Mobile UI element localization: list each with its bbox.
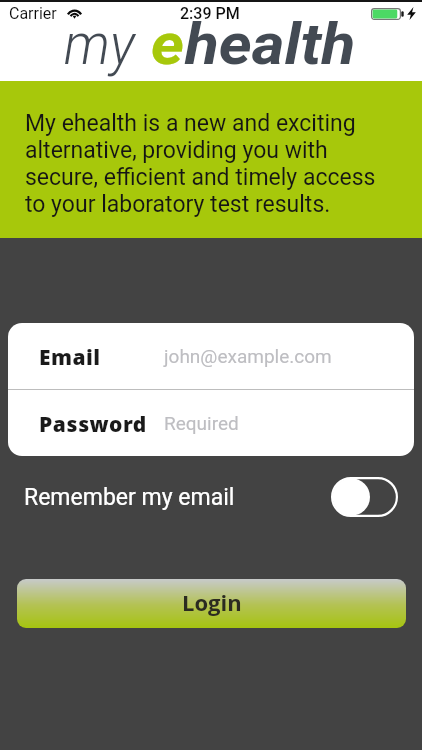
button[interactable]: Remember my email (24, 474, 398, 520)
staticText: my (64, 10, 135, 78)
button[interactable]: Email (8, 323, 414, 389)
staticText: john@example.com (164, 345, 332, 367)
button[interactable]: Password (8, 390, 414, 456)
staticText: 2:39 PM (180, 4, 240, 23)
staticText: Email (39, 343, 101, 372)
button[interactable]: Login (17, 579, 406, 628)
staticText: Required (164, 412, 239, 434)
staticText: Login (182, 587, 242, 617)
staticText: My ehealth is a new and exciting alterna… (25, 110, 376, 218)
staticText: Password (39, 410, 147, 439)
staticText: health (185, 10, 356, 78)
staticText: Remember my email (24, 484, 235, 511)
button[interactable]: Remember my email toggle (331, 477, 398, 517)
staticText: e (151, 10, 185, 78)
staticText: Carrier (9, 4, 57, 23)
